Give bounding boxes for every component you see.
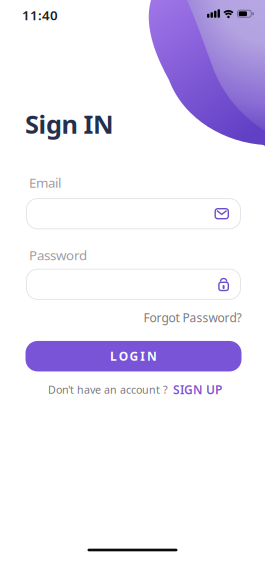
staticText: G [129, 348, 138, 364]
staticText: SIGN UP [173, 381, 222, 397]
button[interactable]: Email [26, 198, 241, 229]
button[interactable]: Forgot Password? [143, 309, 241, 325]
staticText: Forgot Password? [143, 309, 241, 325]
staticText: Password [29, 246, 87, 264]
staticText: Email [29, 174, 61, 191]
staticText: O [119, 348, 128, 364]
staticText: L [110, 348, 117, 364]
staticText: Sign IN [25, 107, 114, 141]
staticText: Don't have an account ? [48, 382, 168, 397]
button[interactable]: SIGN UP [173, 381, 222, 397]
staticText: I [140, 348, 145, 364]
staticText: N [147, 348, 157, 364]
button[interactable]: Password [26, 269, 241, 300]
button[interactable]: L [25, 341, 241, 371]
staticText: 11:40 [22, 6, 58, 24]
